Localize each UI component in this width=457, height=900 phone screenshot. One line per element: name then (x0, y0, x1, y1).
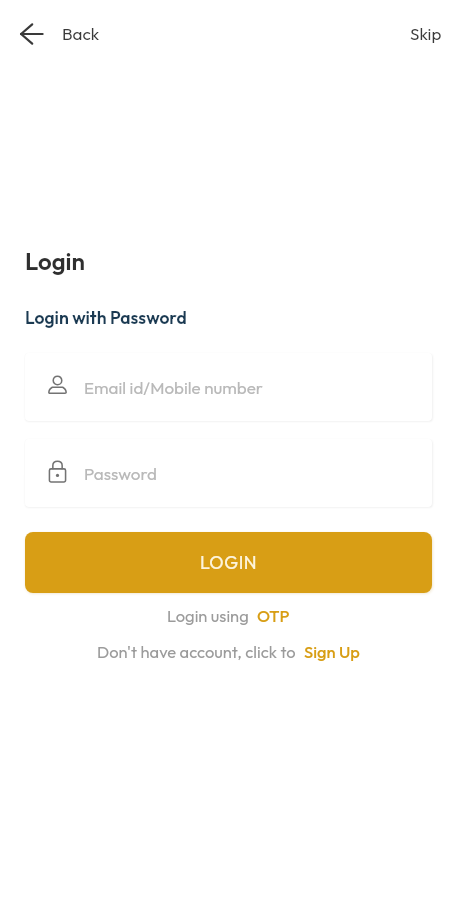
button[interactable]: Skip (395, 11, 457, 56)
staticText: Email id/Mobile number (84, 377, 263, 398)
staticText: OTP (257, 605, 290, 626)
button[interactable]: Email id/Mobile number (25, 353, 432, 421)
staticText: Login with Password (25, 306, 187, 328)
staticText: Sign Up (304, 641, 360, 662)
other: Back (20, 24, 43, 44)
button[interactable]: LOGIN (25, 532, 432, 593)
staticText: Login (25, 246, 86, 276)
button[interactable]: OTP (257, 605, 290, 626)
button[interactable]: Back (0, 13, 116, 54)
staticText: Don't have account, click to (97, 641, 296, 662)
button[interactable]: Password (25, 439, 432, 507)
staticText: LOGIN (200, 551, 258, 574)
staticText: Password (84, 463, 157, 484)
staticText: Login using (167, 605, 249, 626)
staticText: Back (62, 23, 100, 44)
staticText: Skip (410, 23, 442, 44)
button[interactable]: Sign Up (304, 641, 360, 662)
